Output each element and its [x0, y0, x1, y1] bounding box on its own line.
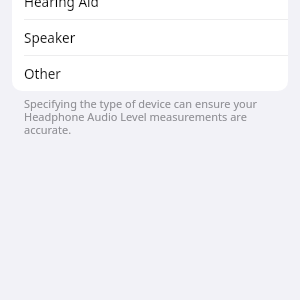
button[interactable]: Other [12, 56, 288, 91]
staticText: Other [24, 65, 61, 83]
staticText: Speaker [24, 29, 76, 47]
button[interactable]: Speaker [12, 20, 288, 56]
staticText: Hearing Aid [24, 0, 99, 11]
button[interactable]: Hearing Aid [12, 0, 288, 20]
staticText: Specifying the type of device can ensure… [24, 96, 264, 138]
